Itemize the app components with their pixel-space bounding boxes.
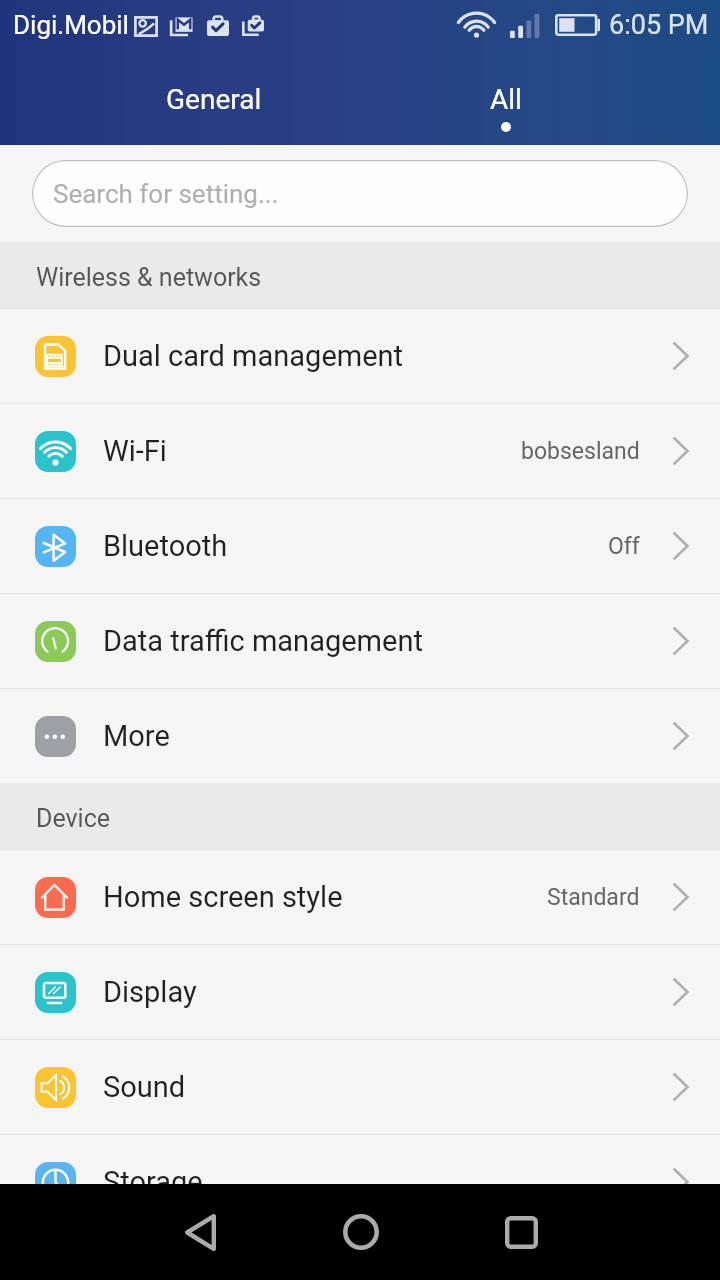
button[interactable]: Home screen style — [0, 850, 720, 944]
button[interactable]: Home — [281, 1184, 441, 1280]
staticText: Off — [608, 533, 640, 560]
button[interactable]: Back — [120, 1184, 280, 1280]
staticText: Bluetooth — [103, 529, 228, 563]
staticText: More — [103, 719, 170, 753]
button[interactable]: Data traffic management — [0, 594, 720, 688]
staticText: Display — [103, 975, 197, 1009]
button[interactable]: Dual card management — [0, 309, 720, 403]
staticText: Wireless & networks — [36, 263, 262, 292]
staticText: Sound — [103, 1070, 186, 1104]
staticText: Dual card management — [103, 339, 404, 373]
button[interactable]: General — [68, 50, 360, 145]
button[interactable]: Recent apps — [441, 1184, 601, 1280]
staticText: Wi-Fi — [103, 434, 167, 468]
button[interactable]: Sound — [0, 1040, 720, 1134]
staticText: All — [490, 83, 522, 116]
staticText: Digi.Mobil — [13, 10, 129, 40]
button[interactable]: Bluetooth — [0, 499, 720, 593]
button[interactable]: More — [0, 689, 720, 783]
button[interactable]: Wi-Fi — [0, 404, 720, 498]
staticText: Search for setting... — [53, 179, 279, 209]
staticText: 6:05 PM — [609, 9, 709, 41]
button[interactable]: All — [360, 50, 652, 145]
staticText: bobsesland — [521, 438, 640, 465]
staticText: Home screen style — [103, 880, 343, 914]
staticText: Storage — [103, 1165, 203, 1199]
staticText: Device — [36, 804, 111, 833]
staticText: Standard — [547, 884, 640, 911]
button[interactable]: Search for setting... — [32, 160, 688, 227]
button[interactable]: Storage — [0, 1135, 720, 1229]
staticText: General — [166, 83, 262, 116]
staticText: Data traffic management — [103, 624, 423, 658]
button[interactable]: Display — [0, 945, 720, 1039]
